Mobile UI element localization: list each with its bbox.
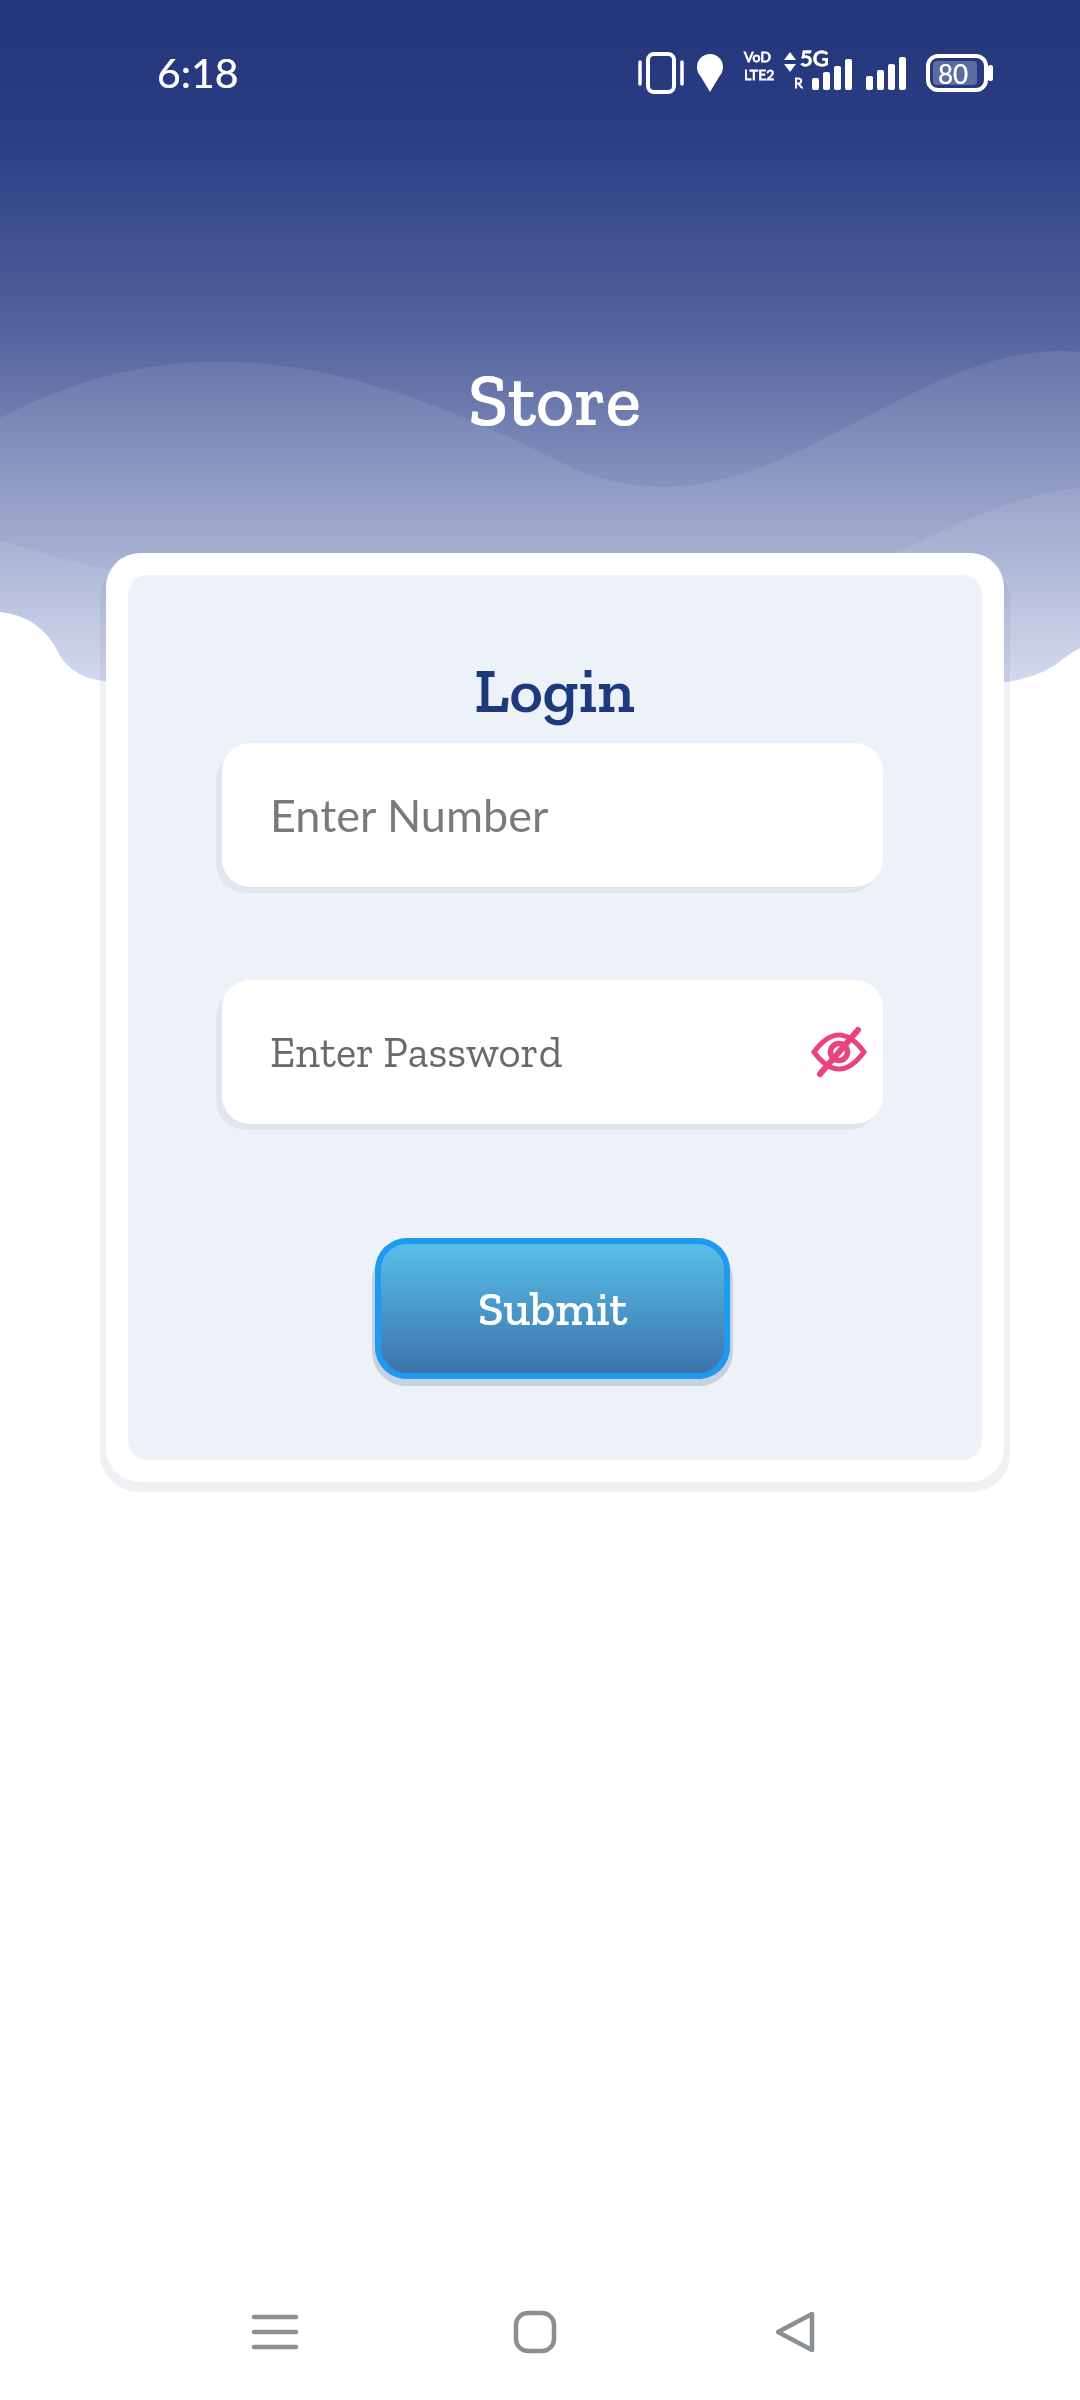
staticText: 6:18	[157, 48, 239, 97]
button[interactable]	[761, 2300, 829, 2364]
button[interactable]: Enter Password	[222, 980, 883, 1124]
staticText: 80	[938, 58, 969, 89]
staticText: VoD	[744, 48, 771, 65]
button[interactable]: Enter Number	[222, 743, 883, 887]
staticText: 5G	[800, 44, 829, 70]
button[interactable]: Submit	[375, 1238, 730, 1379]
staticText: Login	[474, 652, 635, 729]
button[interactable]	[241, 2300, 309, 2364]
staticText: Enter Number	[270, 788, 549, 842]
button[interactable]	[809, 1024, 869, 1080]
staticText: Store	[468, 355, 641, 444]
staticText: Submit	[478, 1281, 628, 1337]
staticText: R	[794, 74, 803, 91]
staticText: Enter Password	[270, 1026, 563, 1078]
button[interactable]	[501, 2300, 569, 2364]
staticText: LTE2	[744, 66, 775, 83]
